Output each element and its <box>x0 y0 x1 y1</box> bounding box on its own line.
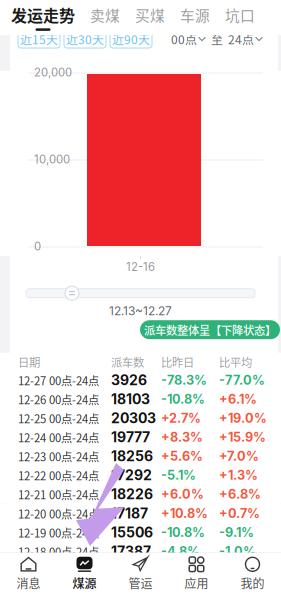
staticText: 至 <box>211 30 223 48</box>
staticText: -10.8% <box>161 525 205 540</box>
staticText: 19777 <box>111 429 150 446</box>
staticText: 12-16 <box>126 260 155 274</box>
staticText: 20303 <box>111 410 156 427</box>
button[interactable]: 车源 <box>180 0 210 35</box>
staticText: +0.7% <box>219 506 260 521</box>
staticText: 10,000 <box>34 153 70 166</box>
staticText: 12-20 00点-24点 <box>18 505 99 522</box>
staticText: 24点 <box>228 30 254 48</box>
staticText: 卖煤 <box>90 4 120 25</box>
staticText: 近15天 <box>20 30 58 48</box>
staticText: +10.8% <box>161 506 208 521</box>
staticText: +6.1% <box>219 392 257 407</box>
staticText: +5.6% <box>161 449 203 464</box>
staticText: 00点 <box>171 30 197 48</box>
button[interactable]: 近30天 <box>64 30 106 48</box>
button[interactable]: 发运走势 <box>11 0 75 35</box>
staticText: 12-23 00点-24点 <box>18 448 99 464</box>
staticText: +8.3% <box>161 430 203 445</box>
staticText: +7.0% <box>219 449 259 464</box>
button[interactable]: 管运 <box>112 553 168 595</box>
button[interactable]: 卖煤 <box>90 0 120 35</box>
staticText: 12-19 00点-24点 <box>18 524 99 541</box>
button[interactable]: 应用 <box>168 553 224 595</box>
staticText: -5.1% <box>161 468 196 483</box>
button[interactable]: 煤源 <box>56 553 112 595</box>
staticText: 派车数整体呈【下降状态】 <box>144 321 276 338</box>
staticText: 12-22 00点-24点 <box>18 467 99 483</box>
button[interactable]: 我的 <box>224 553 280 595</box>
staticText: 17292 <box>111 467 152 484</box>
staticText: 17187 <box>111 505 148 522</box>
staticText: +1.3% <box>219 468 258 483</box>
staticText: 坑口 <box>225 4 255 25</box>
staticText: 近30天 <box>66 30 104 48</box>
staticText: 0 <box>34 240 41 253</box>
button[interactable]: 坑口 <box>225 0 255 35</box>
staticText: 应用 <box>184 574 208 592</box>
staticText: +2.7% <box>161 411 201 426</box>
staticText: 消息 <box>16 574 40 592</box>
button[interactable]: 近15天 <box>18 30 60 48</box>
staticText: 比平均 <box>219 353 252 370</box>
staticText: 买煤 <box>135 4 165 25</box>
staticText: 17387 <box>111 543 151 560</box>
staticText: +19.0% <box>219 411 267 426</box>
staticText: 12-27 00点-24点 <box>18 372 99 388</box>
staticText: 派车数 <box>111 353 144 370</box>
button[interactable]: 00点 <box>171 30 206 48</box>
staticText: 18226 <box>111 486 153 503</box>
staticText: 12-21 00点-24点 <box>18 486 99 502</box>
staticText: 管运 <box>128 574 152 592</box>
staticText: 3926 <box>111 372 147 389</box>
staticText: +6.8% <box>219 487 261 502</box>
button[interactable]: 买煤 <box>135 0 165 35</box>
staticText: -78.3% <box>161 373 207 388</box>
staticText: -9.1% <box>219 525 254 540</box>
staticText: 发运走势 <box>11 3 75 26</box>
staticText: 车源 <box>180 4 210 25</box>
staticText: 比昨日 <box>161 353 194 370</box>
staticText: 18256 <box>111 448 153 465</box>
staticText: -1.0% <box>219 544 256 559</box>
staticText: 12-24 00点-24点 <box>18 429 99 445</box>
staticText: 12.13~12.27 <box>109 304 172 318</box>
staticText: -77.0% <box>219 373 265 388</box>
staticText: 15506 <box>111 524 153 541</box>
staticText: 煤源 <box>72 574 96 592</box>
staticText: +15.9% <box>219 430 266 445</box>
button[interactable]: 消息 <box>0 553 56 595</box>
staticText: -4.8% <box>161 544 200 559</box>
staticText: 12-25 00点-24点 <box>18 410 99 426</box>
staticText: 近90天 <box>112 30 150 48</box>
staticText: +6.0% <box>161 487 204 502</box>
button[interactable]: 近90天 <box>110 30 152 48</box>
staticText: 20,000 <box>34 66 72 79</box>
staticText: -10.8% <box>161 392 205 407</box>
button[interactable]: 24点 <box>228 30 263 48</box>
staticText: 18103 <box>111 391 150 408</box>
staticText: 12-18 00点-24点 <box>18 543 99 560</box>
staticText: 12-26 00点-24点 <box>18 391 99 407</box>
staticText: 日期 <box>18 353 40 370</box>
staticText: 我的 <box>240 574 264 592</box>
